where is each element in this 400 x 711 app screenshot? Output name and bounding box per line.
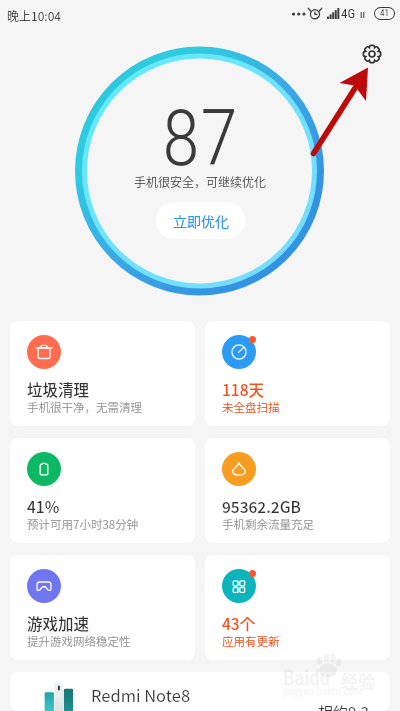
- button[interactable]: Redmi Note8: [10, 672, 390, 711]
- button[interactable]: 游戏加速: [10, 555, 195, 660]
- button[interactable]: 43个: [205, 555, 390, 660]
- button[interactable]: 41%: [10, 438, 195, 543]
- staticText: 41: [380, 8, 389, 19]
- staticText: 应用有更新: [222, 633, 280, 650]
- staticText: 立即优化: [173, 211, 229, 231]
- staticText: 晚上10:04: [7, 7, 61, 24]
- staticText: 手机很干净，无需清理: [27, 399, 142, 416]
- button[interactable]: 95362.2GB: [205, 438, 390, 543]
- staticText: 提升游戏网络稳定性: [27, 633, 131, 650]
- staticText: jingyan.baidu.com: [283, 685, 363, 698]
- staticText: 垃圾清理: [27, 378, 90, 400]
- staticText: 相约9.3: [318, 701, 369, 711]
- staticText: 手机很安全，可继续优化: [134, 173, 267, 190]
- button[interactable]: 垃圾清理: [10, 321, 195, 426]
- staticText: Baidu: [283, 666, 330, 691]
- staticText: 87: [162, 93, 238, 184]
- staticText: Redmi Note8: [91, 683, 191, 707]
- button[interactable]: 118天: [205, 321, 390, 426]
- staticText: 游戏加速: [27, 612, 90, 634]
- staticText: 手机剩余流量充足: [222, 516, 314, 533]
- staticText: 4G: [341, 6, 356, 21]
- button[interactable]: 立即优化: [156, 202, 245, 239]
- staticText: 95362.2GB: [222, 495, 301, 517]
- button[interactable]: Settings: [358, 40, 386, 68]
- staticText: 经验: [341, 668, 375, 693]
- staticText: 预计可用7小时38分钟: [27, 516, 139, 533]
- staticText: 未全盘扫描: [222, 399, 280, 416]
- staticText: 41%: [27, 495, 60, 517]
- staticText: 118天: [222, 378, 265, 400]
- staticText: 43个: [222, 612, 256, 634]
